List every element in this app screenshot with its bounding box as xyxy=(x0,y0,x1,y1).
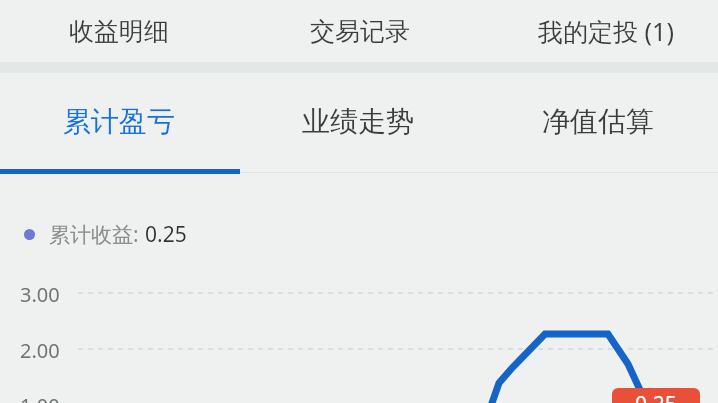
staticText: 净值估算 xyxy=(542,104,654,139)
staticText: 0.25 xyxy=(635,390,677,403)
staticText: 收益明细 xyxy=(69,16,169,47)
button[interactable]: 业绩走势 xyxy=(243,73,473,169)
staticText: 1.00 xyxy=(20,392,60,403)
button[interactable]: Latest value 0.25 xyxy=(612,388,700,403)
button[interactable]: 我的定投 (1) xyxy=(496,0,716,62)
button[interactable]: 收益明细 xyxy=(9,0,229,62)
staticText: 累计盈亏 xyxy=(63,104,175,139)
staticText: 交易记录 xyxy=(310,16,410,47)
button[interactable]: 累计盈亏 xyxy=(4,73,234,169)
staticText: 业绩走势 xyxy=(302,104,414,139)
button[interactable]: 交易记录 xyxy=(250,0,470,62)
staticText: 3.00 xyxy=(20,281,60,308)
staticText: 0.25 xyxy=(145,220,187,249)
staticText: 我的定投 (1) xyxy=(538,14,674,48)
button[interactable]: 净值估算 xyxy=(483,73,713,169)
staticText: 2.00 xyxy=(20,337,60,364)
staticText: 累计收益: xyxy=(49,220,145,249)
button[interactable]: 累计收益: xyxy=(24,220,187,249)
